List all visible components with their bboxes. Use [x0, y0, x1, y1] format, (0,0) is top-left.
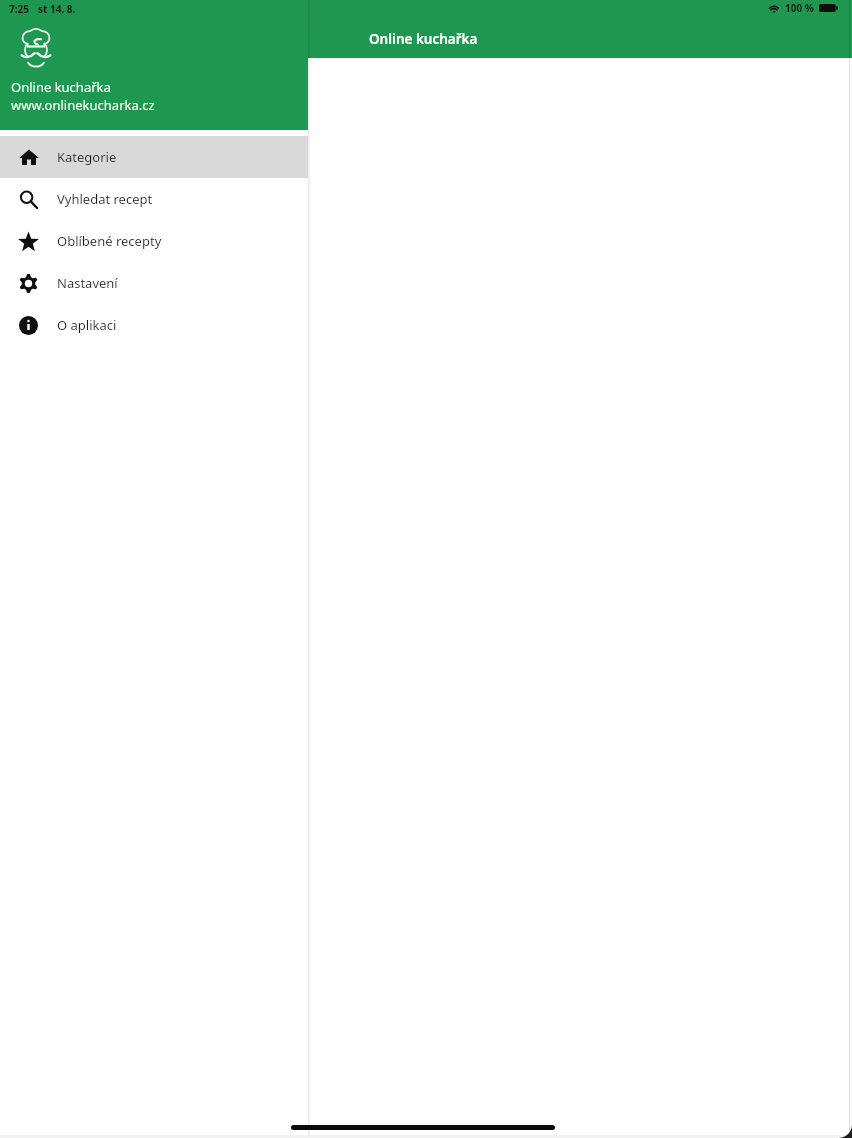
button[interactable]: Kategorie	[0, 136, 308, 178]
staticText: Nastavení	[57, 274, 118, 292]
staticText: Oblíbené recepty	[57, 232, 162, 250]
button[interactable]: Oblíbené recepty	[0, 220, 308, 262]
button[interactable]: Vyhledat recept	[0, 178, 308, 220]
button[interactable]: Online kuchařka – www.onlinekucharka.cz	[0, 0, 308, 130]
staticText: 100 %	[785, 1, 814, 15]
staticText: 7:25	[9, 2, 29, 16]
button[interactable]: O aplikaci	[0, 304, 308, 346]
staticText: www.onlinekucharka.cz	[11, 96, 155, 114]
staticText: Kategorie	[57, 148, 117, 166]
staticText: st 14. 8.	[38, 2, 76, 16]
staticText: Vyhledat recept	[57, 190, 153, 208]
staticText: Online kuchařka	[11, 78, 111, 96]
staticText: O aplikaci	[57, 316, 117, 334]
button[interactable]: Nastavení	[0, 262, 308, 304]
staticText: Online kuchařka	[369, 30, 478, 48]
